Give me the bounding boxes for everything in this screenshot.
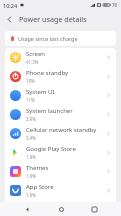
staticText: Phone standby — [26, 69, 69, 77]
button[interactable]: Google Play services — [5, 200, 116, 216]
staticText: 3.4% — [26, 135, 36, 141]
staticText: 1.9% — [26, 173, 36, 179]
button[interactable]: System launcher — [5, 105, 116, 124]
staticText: Screen — [26, 50, 46, 58]
button[interactable]: Screen — [5, 48, 116, 67]
staticText: System UI — [26, 88, 55, 96]
button[interactable]: Cellular network standby — [5, 124, 116, 143]
staticText: 1.6% — [26, 192, 36, 198]
staticText: Google Play services — [26, 201, 84, 209]
staticText: 10:24 — [3, 2, 18, 9]
staticText: 11% — [26, 97, 35, 103]
button[interactable]: Recents — [87, 202, 101, 216]
staticText: Power usage details — [19, 14, 87, 24]
button[interactable]: Home — [54, 202, 68, 216]
staticText: System launcher — [26, 107, 73, 115]
staticText: Themes — [26, 164, 49, 172]
staticText: 1.9% — [26, 154, 36, 160]
staticText: App Store — [26, 183, 54, 191]
staticText: Google Play Store — [26, 145, 76, 153]
staticText: 76 — [112, 2, 118, 8]
button[interactable]: App Store — [5, 181, 116, 200]
staticText: Usage since last charge — [18, 35, 78, 42]
staticText: 1.5% — [26, 210, 36, 216]
button[interactable]: Phone standby — [5, 67, 116, 86]
staticText: 3.9% — [26, 116, 36, 122]
button[interactable]: Back — [0, 10, 18, 28]
button[interactable]: System UI — [5, 86, 116, 105]
button[interactable]: Themes — [5, 162, 116, 181]
button[interactable]: Usage since last charge — [5, 31, 116, 46]
button[interactable]: Google Play Store — [5, 143, 116, 162]
button[interactable]: Back — [20, 202, 34, 216]
staticText: 41.3% — [26, 59, 39, 65]
staticText: 19% — [26, 78, 35, 84]
staticText: Cellular network standby — [26, 126, 97, 134]
